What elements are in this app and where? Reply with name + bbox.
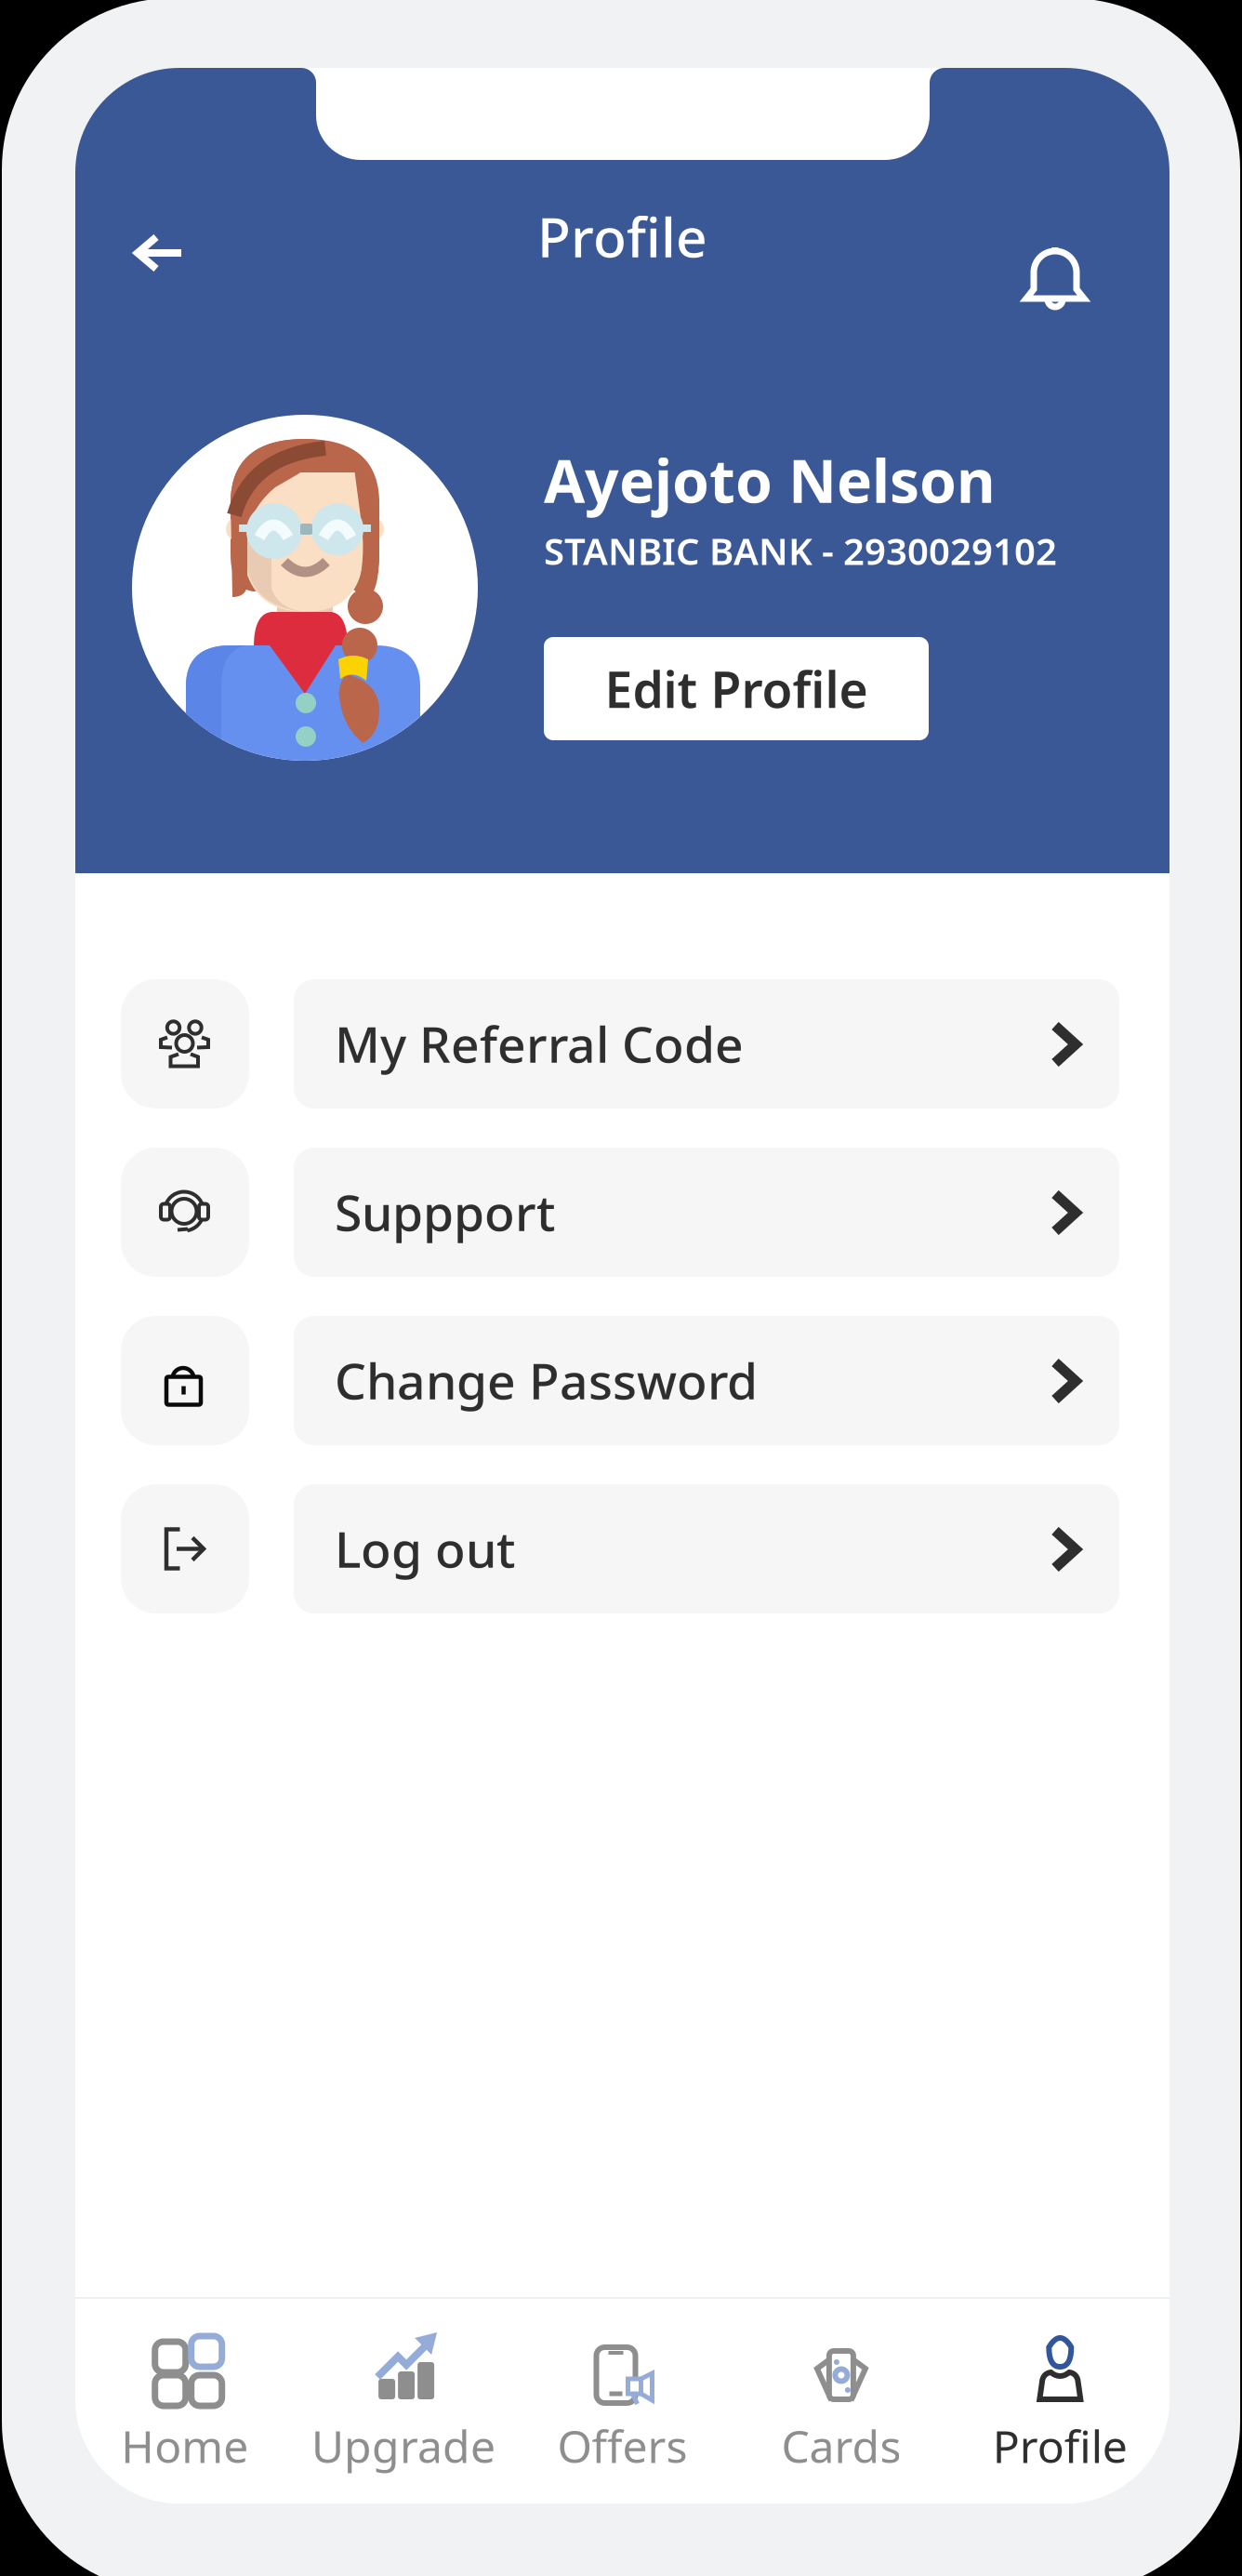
staticText: Change Password	[335, 1347, 758, 1413]
staticText: Log out	[335, 1515, 515, 1581]
staticText: My Referral Code	[335, 1010, 744, 1076]
staticText: Ayejoto Nelson	[544, 440, 996, 519]
button[interactable]: Suppport	[75, 1148, 1169, 1277]
button[interactable]: Log out	[75, 1484, 1169, 1613]
button[interactable]: Notifications	[981, 209, 1074, 297]
staticText: Cards	[781, 2416, 901, 2475]
button[interactable]: Edit Profile	[544, 637, 929, 740]
staticText: STANBIC BANK - 2930029102	[544, 526, 1057, 575]
button[interactable]: Change Password	[75, 1316, 1169, 1445]
staticText: Upgrade	[312, 2416, 496, 2475]
button[interactable]: Profile	[951, 2299, 1169, 2503]
staticText: Edit Profile	[605, 656, 868, 722]
button[interactable]: Upgrade	[294, 2299, 513, 2503]
button[interactable]: Offers	[513, 2299, 732, 2503]
staticText: Profile	[993, 2416, 1127, 2475]
staticText: Home	[121, 2416, 248, 2475]
button[interactable]: Cards	[732, 2299, 951, 2503]
button[interactable]: Back	[112, 213, 205, 293]
staticText: Offers	[557, 2416, 687, 2475]
staticText: Profile	[537, 200, 707, 272]
button[interactable]: My Referral Code	[75, 979, 1169, 1109]
staticText: Suppport	[335, 1179, 555, 1245]
button[interactable]: Home	[75, 2299, 294, 2503]
